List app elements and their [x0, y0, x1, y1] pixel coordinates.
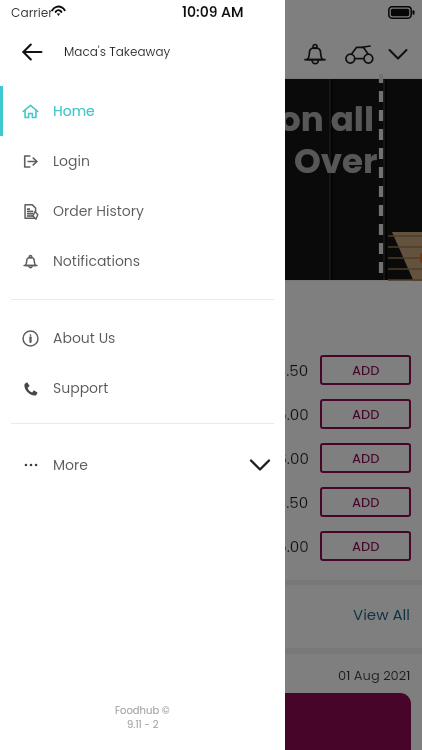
- staticText: on all: [279, 95, 374, 143]
- button[interactable]: ADD: [320, 355, 411, 385]
- staticText: £6.00: [268, 448, 309, 469]
- staticText: Foodhub ©: [115, 703, 170, 717]
- staticText: £3.50: [268, 360, 309, 381]
- button[interactable]: ADD: [320, 443, 411, 473]
- staticText: Order History: [53, 201, 144, 221]
- staticText: Home: [53, 101, 95, 121]
- button[interactable]: Notifications: [0, 236, 285, 286]
- staticText: 01 Aug 2021: [338, 666, 411, 684]
- staticText: Over: [294, 137, 378, 185]
- button[interactable]: ADD: [320, 531, 411, 561]
- staticText: 10:09 AM: [182, 2, 244, 22]
- staticText: Carrier: [11, 4, 53, 21]
- button[interactable]: Order History: [0, 186, 285, 236]
- staticText: Maca's Takeaway: [64, 43, 171, 60]
- staticText: ADD: [352, 405, 380, 423]
- staticText: ADD: [352, 537, 380, 555]
- button[interactable]: Support: [0, 363, 285, 413]
- staticText: ADD: [352, 361, 380, 379]
- button[interactable]: Delivery: [339, 33, 381, 75]
- button[interactable]: Expand: [381, 37, 415, 71]
- staticText: Support: [53, 378, 109, 398]
- staticText: £3.50: [268, 492, 309, 513]
- button[interactable]: ADD: [320, 399, 411, 429]
- button[interactable]: Login: [0, 136, 285, 186]
- button[interactable]: ADD: [320, 487, 411, 517]
- staticText: £5.00: [268, 404, 309, 425]
- staticText: Login: [53, 151, 90, 171]
- button[interactable]: View All: [353, 604, 410, 625]
- staticText: Notifications: [53, 251, 141, 271]
- staticText: About Us: [53, 328, 116, 348]
- button[interactable]: About Us: [0, 313, 285, 363]
- staticText: 9.11 - 2: [127, 717, 159, 731]
- staticText: £5.00: [268, 536, 309, 557]
- button[interactable]: Home: [0, 86, 285, 136]
- staticText: More: [53, 455, 88, 475]
- button[interactable]: More: [0, 441, 285, 489]
- staticText: ADD: [352, 493, 380, 511]
- staticText: ADD: [352, 449, 380, 467]
- button[interactable]: Notifications: [295, 34, 335, 74]
- button[interactable]: Back: [8, 28, 56, 76]
